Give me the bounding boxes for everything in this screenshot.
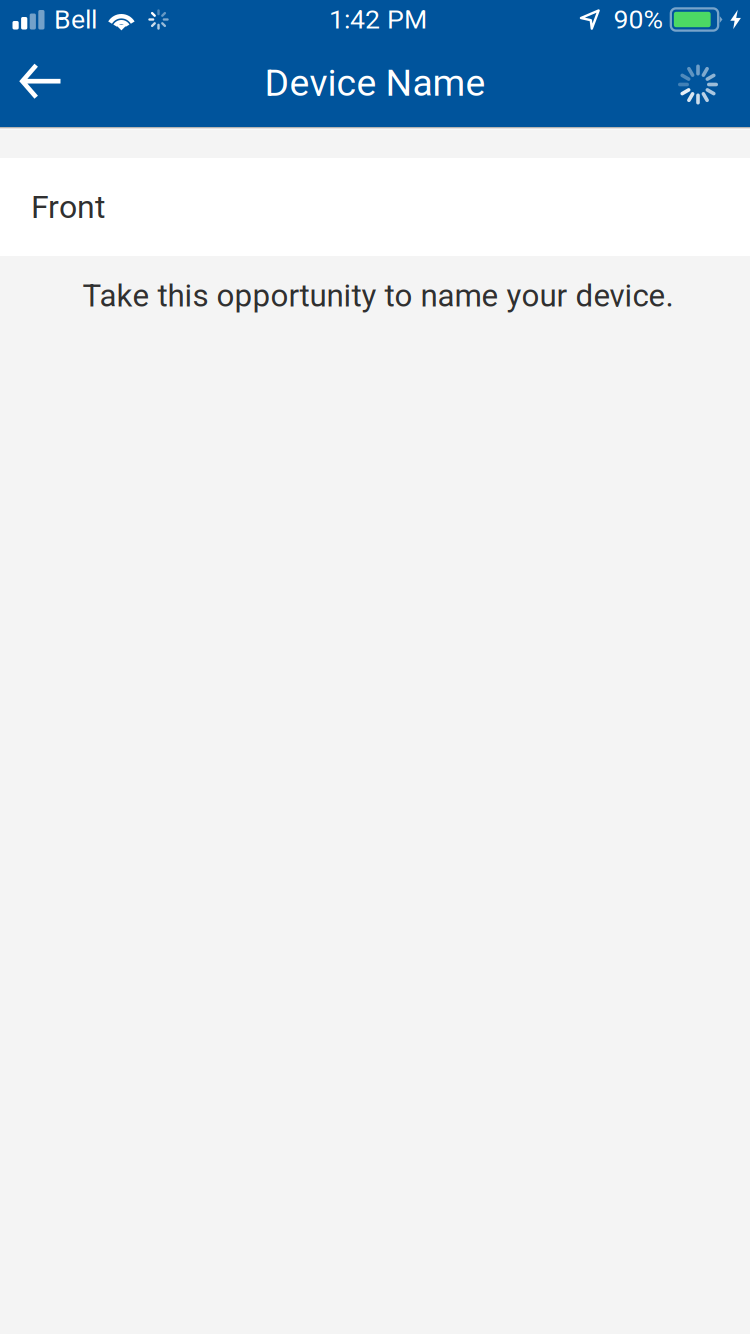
- button[interactable]: Front: [0, 158, 750, 256]
- staticText: Front: [31, 188, 105, 226]
- staticText: 90%: [613, 4, 663, 35]
- staticText: Device Name: [264, 61, 485, 105]
- button[interactable]: Back: [0, 39, 83, 127]
- staticText: Bell: [54, 4, 97, 35]
- staticText: Take this opportunity to name your devic…: [82, 277, 673, 314]
- button[interactable]: Loading: [646, 39, 750, 127]
- staticText: 1:42 PM: [329, 4, 427, 35]
